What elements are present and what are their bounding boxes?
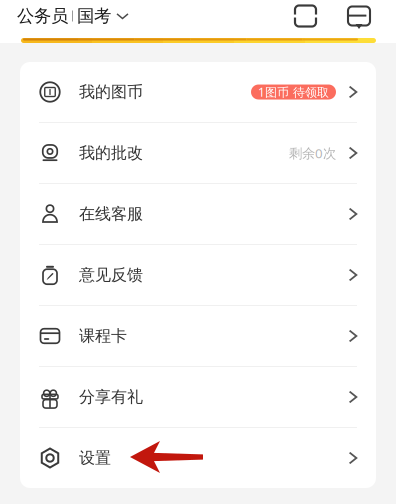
button[interactable]: 意见反馈 bbox=[20, 245, 376, 305]
staticText: 我的批改 bbox=[79, 143, 143, 163]
staticText: 1图币 待领取 bbox=[258, 84, 329, 100]
button[interactable]: 课程卡 bbox=[20, 306, 376, 366]
staticText: 课程卡 bbox=[79, 326, 127, 346]
button[interactable]: 公务员 bbox=[0, 1, 138, 31]
button[interactable]: 我的批改 bbox=[20, 123, 376, 183]
staticText: 公务员 bbox=[17, 5, 68, 27]
staticText: 我的图币 bbox=[79, 82, 143, 102]
staticText: 意见反馈 bbox=[79, 265, 143, 285]
staticText: 剩余0次 bbox=[289, 144, 336, 162]
button[interactable]: 我的图币 bbox=[20, 62, 376, 122]
button[interactable]: 分享有礼 bbox=[20, 367, 376, 427]
button[interactable]: Scan bbox=[289, 0, 322, 32]
staticText: 设置 bbox=[79, 448, 111, 468]
staticText: 分享有礼 bbox=[79, 387, 143, 407]
button[interactable]: 在线客服 bbox=[20, 184, 376, 244]
staticText: 国考 bbox=[77, 5, 111, 27]
button[interactable]: Messages bbox=[343, 0, 375, 32]
button[interactable]: 设置 bbox=[20, 428, 376, 488]
staticText: 在线客服 bbox=[79, 204, 143, 224]
